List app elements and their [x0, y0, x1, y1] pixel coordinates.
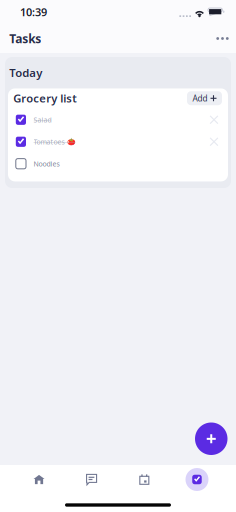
button[interactable]: Tomatoes 🍅: [8, 131, 228, 153]
staticText: Salad: [33, 115, 51, 124]
button[interactable]: More options: [210, 24, 234, 52]
staticText: Noodles: [33, 159, 59, 168]
staticText: Tomatoes 🍅: [33, 137, 75, 146]
button[interactable]: Home: [13, 465, 65, 494]
button[interactable]: Add task: [195, 422, 227, 455]
button[interactable]: Tasks: [171, 465, 223, 494]
staticText: 10:39: [20, 5, 47, 19]
button[interactable]: Add: [187, 91, 222, 105]
button[interactable]: Noodles: [8, 153, 228, 175]
staticText: Add: [192, 93, 207, 104]
staticText: Tasks: [9, 30, 41, 47]
button[interactable]: Messages: [65, 465, 118, 494]
staticText: Today: [9, 65, 42, 80]
button[interactable]: Salad: [8, 109, 228, 131]
button[interactable]: Calendar: [118, 465, 171, 494]
staticText: Grocery list: [13, 91, 77, 106]
